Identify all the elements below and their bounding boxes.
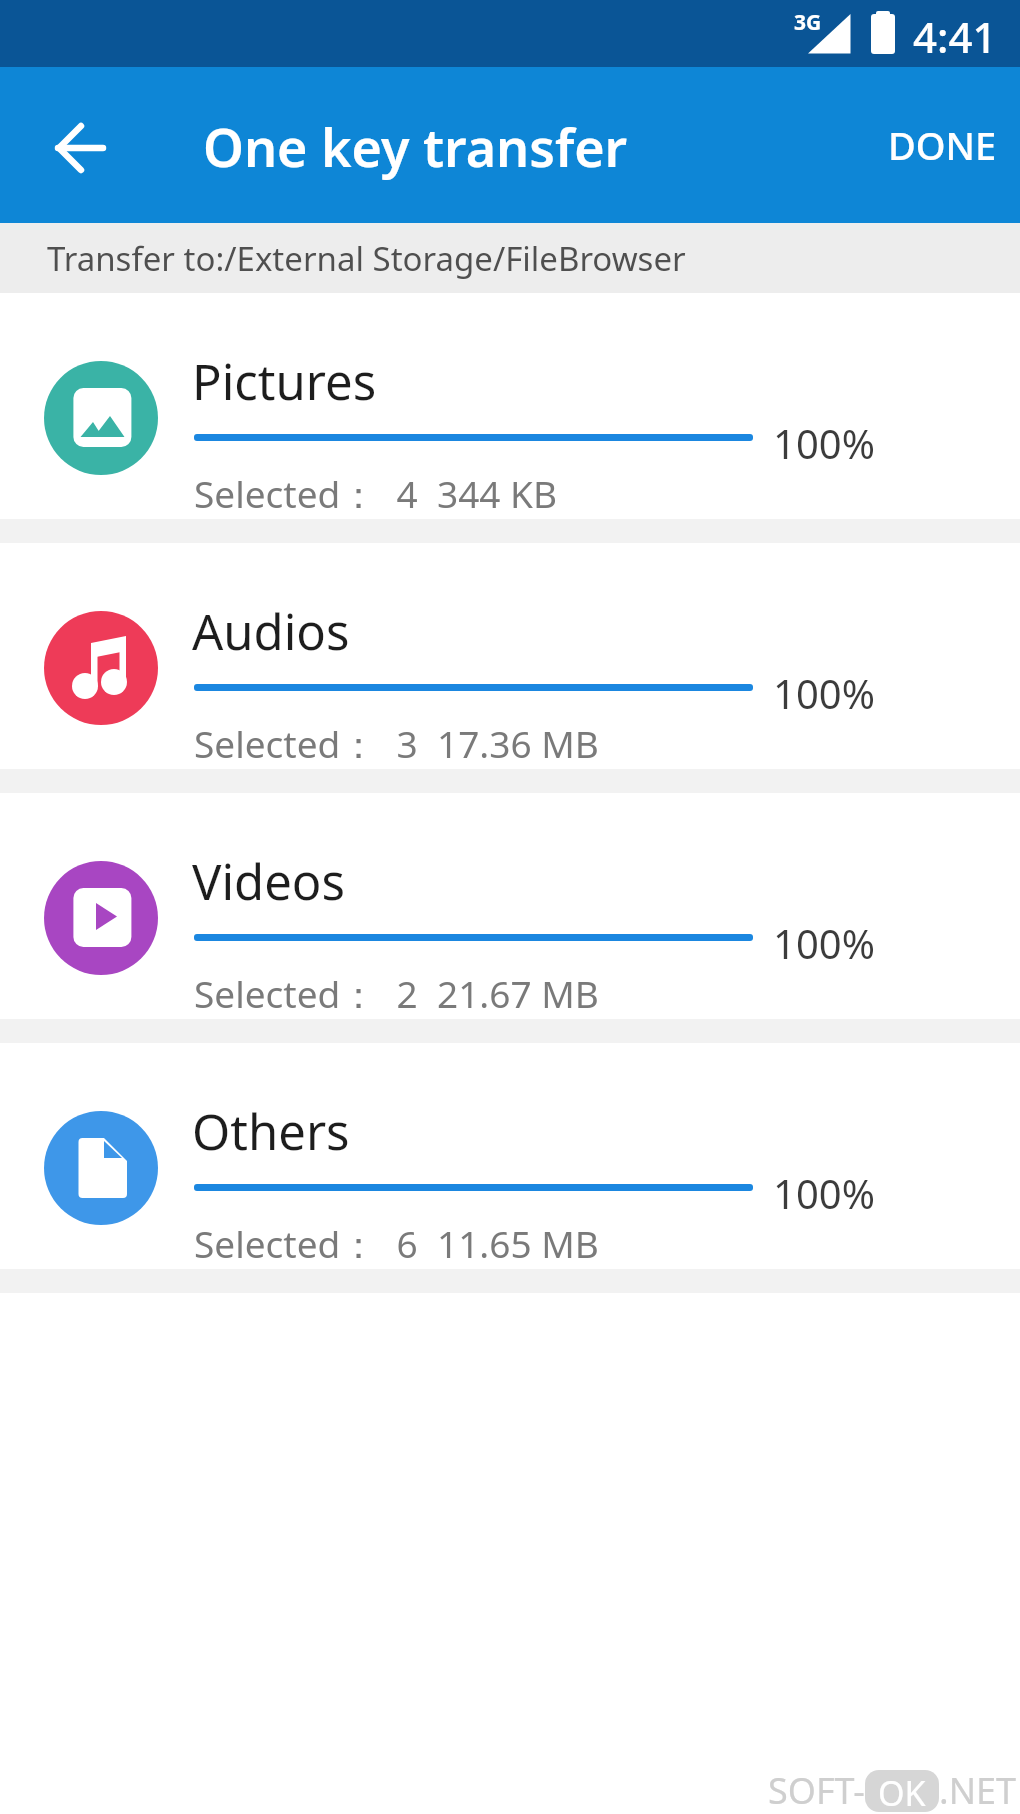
staticText: Audios — [192, 598, 350, 665]
staticText: 3G — [794, 8, 822, 37]
staticText: Others — [192, 1098, 350, 1165]
button[interactable] — [52, 122, 108, 174]
staticText: Selected： 6 11.65 MB — [194, 1218, 599, 1269]
staticText: SOFT- — [768, 1766, 865, 1814]
button[interactable]: Others — [0, 1043, 1020, 1269]
staticText: Selected： 3 17.36 MB — [194, 718, 599, 769]
staticText: Selected： 2 21.67 MB — [194, 968, 599, 1019]
button[interactable]: Audios — [0, 543, 1020, 769]
staticText: Pictures — [192, 348, 377, 415]
button[interactable]: Pictures — [0, 293, 1020, 519]
staticText: OK — [878, 1770, 926, 1812]
staticText: 100% — [773, 416, 875, 470]
button[interactable]: DONE — [888, 119, 997, 171]
staticText: Videos — [192, 848, 345, 915]
staticText: 4:41 — [913, 8, 997, 65]
staticText: 100% — [773, 1166, 875, 1220]
staticText: One key transfer — [203, 111, 628, 182]
staticText: 100% — [773, 666, 875, 720]
staticText: DONE — [888, 119, 997, 171]
staticText: 100% — [773, 916, 875, 970]
staticText: Selected： 4 344 KB — [194, 468, 558, 519]
button[interactable]: Videos — [0, 793, 1020, 1019]
staticText: .NET — [939, 1766, 1017, 1814]
staticText: Transfer to:/External Storage/FileBrowse… — [47, 236, 686, 281]
